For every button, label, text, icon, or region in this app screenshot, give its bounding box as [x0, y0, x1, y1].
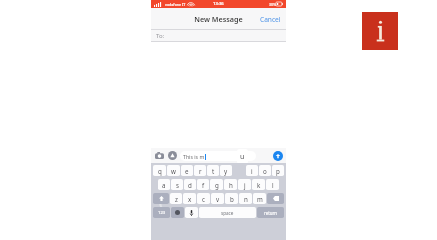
button[interactable]: c: [197, 193, 210, 204]
button[interactable]: Camera: [154, 150, 165, 161]
staticText: w: [171, 167, 176, 175]
button[interactable]: o: [259, 165, 271, 176]
staticText: 30%: [269, 2, 277, 7]
staticText: t: [212, 167, 215, 175]
button[interactable]: This is m: [180, 151, 256, 161]
staticText: Cancel: [260, 15, 281, 24]
button[interactable]: space: [199, 207, 256, 218]
staticText: To:: [156, 32, 165, 40]
button[interactable]: 123: [153, 207, 170, 218]
staticText: This is m: [183, 153, 205, 160]
button[interactable]: Apps: [167, 150, 178, 161]
button[interactable]: Emoji: [171, 207, 184, 218]
button[interactable]: Information: [362, 12, 398, 50]
button[interactable]: i: [246, 165, 258, 176]
staticText: j: [244, 181, 246, 189]
staticText: g: [215, 181, 219, 189]
staticText: vodafone IT: [165, 2, 186, 7]
button[interactable]: Send: [273, 151, 283, 161]
button[interactable]: s: [171, 179, 183, 190]
staticText: p: [276, 167, 280, 175]
button[interactable]: r: [194, 165, 206, 176]
staticText: y: [224, 167, 228, 175]
staticText: a: [162, 181, 166, 189]
button[interactable]: h: [224, 179, 237, 190]
button[interactable]: To:: [151, 30, 286, 42]
staticText: e: [185, 167, 189, 175]
button[interactable]: a: [158, 179, 170, 190]
staticText: c: [202, 195, 205, 203]
button[interactable]: q: [153, 165, 166, 176]
staticText: 123: [158, 210, 166, 216]
button[interactable]: e: [181, 165, 193, 176]
button[interactable]: w: [167, 165, 180, 176]
button[interactable]: z: [170, 193, 182, 204]
button[interactable]: v: [211, 193, 224, 204]
staticText: d: [188, 181, 192, 189]
button[interactable]: Backspace: [267, 193, 284, 204]
button[interactable]: n: [239, 193, 252, 204]
button[interactable]: g: [210, 179, 223, 190]
button[interactable]: y: [220, 165, 232, 176]
staticText: space: [221, 210, 234, 216]
staticText: f: [202, 181, 205, 189]
staticText: n: [244, 195, 248, 203]
button[interactable]: j: [238, 179, 251, 190]
staticText: 13:36: [213, 1, 224, 7]
staticText: New Message: [194, 14, 243, 24]
staticText: k: [257, 181, 261, 189]
button[interactable]: k: [252, 179, 265, 190]
button[interactable]: x: [183, 193, 196, 204]
button[interactable]: Cancel: [255, 11, 286, 28]
staticText: r: [199, 167, 202, 175]
button[interactable]: f: [197, 179, 209, 190]
staticText: u: [240, 152, 245, 162]
staticText: q: [158, 167, 162, 175]
button[interactable]: Shift: [153, 193, 169, 204]
staticText: b: [230, 195, 234, 203]
button[interactable]: t: [207, 165, 219, 176]
staticText: s: [176, 181, 179, 189]
button[interactable]: d: [184, 179, 196, 190]
button[interactable]: Dictate: [185, 207, 198, 218]
button[interactable]: b: [225, 193, 238, 204]
staticText: return: [264, 210, 278, 216]
staticText: x: [188, 195, 192, 203]
staticText: v: [216, 195, 220, 203]
staticText: z: [175, 195, 178, 203]
staticText: l: [272, 181, 274, 189]
staticText: m: [257, 195, 263, 203]
button[interactable]: m: [253, 193, 266, 204]
button[interactable]: l: [266, 179, 279, 190]
button[interactable]: p: [272, 165, 284, 176]
staticText: h: [229, 181, 233, 189]
staticText: i: [251, 167, 253, 175]
staticText: o: [263, 167, 267, 175]
button[interactable]: return: [257, 207, 284, 218]
